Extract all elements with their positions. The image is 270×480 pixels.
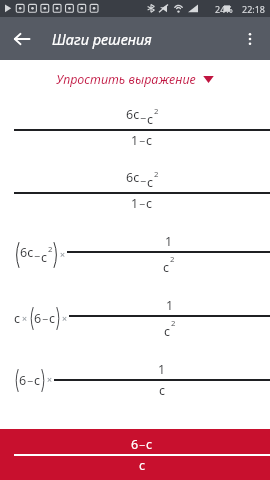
staticText: c xyxy=(49,310,56,327)
staticText: 1 xyxy=(131,195,139,212)
button[interactable]: 6 xyxy=(0,429,270,480)
button[interactable]: c xyxy=(14,297,270,340)
staticText: − xyxy=(139,438,146,452)
staticText: × xyxy=(62,313,68,325)
button[interactable]: 6c xyxy=(14,233,270,276)
staticText: − xyxy=(140,174,147,188)
staticText: c xyxy=(146,195,153,212)
staticText: c xyxy=(164,323,171,340)
staticText: − xyxy=(34,249,41,263)
staticText: × xyxy=(22,313,28,325)
button[interactable]: 6c xyxy=(14,169,270,212)
button[interactable]: Back xyxy=(4,21,40,57)
staticText: c xyxy=(146,436,153,453)
staticText: − xyxy=(42,312,49,326)
staticText: 6c xyxy=(126,106,140,123)
staticText: × xyxy=(60,249,66,261)
staticText: 2 xyxy=(154,169,159,180)
staticText: − xyxy=(27,374,34,388)
staticText: 1 xyxy=(158,361,166,378)
staticText: Шаги решения xyxy=(52,29,152,49)
staticText: 6c xyxy=(20,244,34,261)
staticText: − xyxy=(139,197,146,211)
staticText: − xyxy=(140,111,147,125)
button[interactable]: 6c xyxy=(14,106,270,149)
button[interactable]: More options xyxy=(232,21,268,57)
staticText: 2 xyxy=(154,106,159,117)
staticText: c xyxy=(139,457,146,474)
staticText: 6 xyxy=(19,372,27,389)
staticText: c xyxy=(34,372,41,389)
staticText: × xyxy=(47,374,53,386)
staticText: 2 xyxy=(170,254,175,265)
staticText: c xyxy=(163,259,170,276)
staticText: 2 xyxy=(171,318,176,329)
button[interactable]: 6 xyxy=(14,361,270,399)
staticText: 1 xyxy=(165,233,173,250)
staticText: 6 xyxy=(34,310,42,327)
staticText: c xyxy=(14,310,21,327)
staticText: 1 xyxy=(131,132,139,149)
staticText: c xyxy=(159,382,166,399)
staticText: 24% xyxy=(215,3,233,15)
staticText: c xyxy=(147,111,154,128)
staticText: 22:18 xyxy=(242,3,266,15)
staticText: 6c xyxy=(126,169,140,186)
button[interactable]: Упростить выражение xyxy=(0,60,270,98)
staticText: c xyxy=(146,132,153,149)
staticText: Упростить выражение xyxy=(56,71,196,88)
staticText: c xyxy=(147,174,154,191)
staticText: c xyxy=(41,249,48,266)
staticText: 6 xyxy=(131,436,139,453)
staticText: 1 xyxy=(166,297,174,314)
staticText: − xyxy=(139,134,146,148)
staticText: 2 xyxy=(48,244,53,255)
